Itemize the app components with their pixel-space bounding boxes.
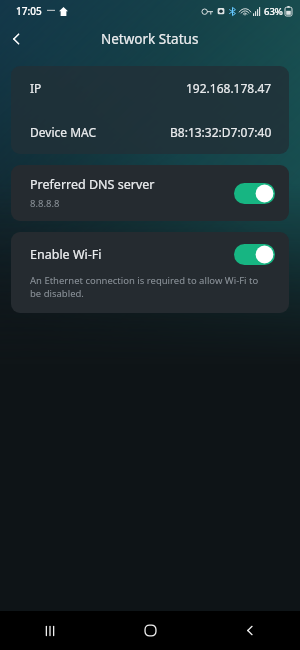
staticText: 8.8.8.8 bbox=[30, 197, 60, 210]
button[interactable]: Home bbox=[124, 611, 176, 650]
staticText: Device MAC bbox=[30, 124, 97, 140]
button[interactable]: Back bbox=[3, 25, 31, 53]
button[interactable]: IP bbox=[11, 66, 289, 110]
staticText: 192.168.178.47 bbox=[186, 80, 272, 96]
button[interactable]: Device MAC bbox=[11, 110, 289, 154]
button[interactable]: Enable Wi-Fi bbox=[11, 232, 289, 313]
button[interactable]: Toggle bbox=[234, 183, 275, 204]
button[interactable]: Toggle bbox=[234, 244, 275, 265]
staticText: 17:05 bbox=[16, 4, 42, 18]
staticText: Network Status bbox=[101, 30, 199, 48]
staticText: B8:13:32:D7:07:40 bbox=[170, 124, 272, 140]
staticText: IP bbox=[30, 80, 42, 96]
staticText: Enable Wi-Fi bbox=[30, 246, 234, 263]
staticText: Preferred DNS server bbox=[30, 176, 155, 193]
button[interactable]: Back bbox=[224, 611, 276, 650]
button[interactable]: Preferred DNS server bbox=[11, 165, 289, 221]
button[interactable]: Recents bbox=[24, 611, 76, 650]
staticText: 63% bbox=[264, 5, 283, 18]
staticText: An Ethernet connection is required to al… bbox=[30, 274, 270, 300]
